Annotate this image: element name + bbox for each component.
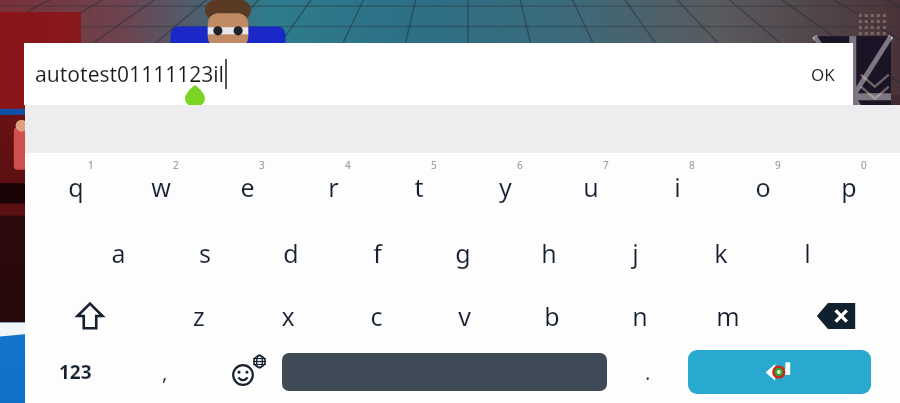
button[interactable]: b — [508, 285, 596, 347]
button[interactable]: Enter — [688, 350, 871, 394]
button[interactable]: u — [548, 153, 634, 221]
button[interactable]: c — [332, 285, 420, 347]
button[interactable]: 123 — [25, 347, 126, 397]
staticText: d — [283, 236, 299, 270]
staticText: 9 — [775, 158, 781, 172]
staticText: OK — [811, 63, 835, 86]
staticText: 6 — [517, 158, 523, 172]
button[interactable]: f — [334, 221, 420, 285]
staticText: c — [370, 299, 383, 333]
button[interactable]: i — [634, 153, 720, 221]
staticText: l — [804, 236, 811, 270]
button[interactable]: m — [684, 285, 772, 347]
staticText: 4 — [345, 158, 351, 172]
staticText: n — [632, 299, 648, 333]
button[interactable]: o — [720, 153, 806, 221]
staticText: i — [674, 170, 681, 204]
staticText: 2 — [173, 158, 179, 172]
button[interactable]: Space — [282, 353, 607, 391]
button[interactable]: l — [764, 221, 850, 285]
staticText: e — [240, 170, 255, 204]
button[interactable]: d — [248, 221, 334, 285]
button[interactable]: n — [596, 285, 684, 347]
button[interactable]: v — [420, 285, 508, 347]
staticText: 5 — [431, 158, 437, 172]
staticText: b — [544, 299, 560, 333]
staticText: autotest01111123il — [35, 60, 225, 89]
staticText: , — [162, 359, 168, 386]
staticText: t — [414, 170, 424, 204]
button[interactable]: s — [162, 221, 248, 285]
staticText: o — [755, 170, 771, 204]
staticText: 3 — [259, 158, 265, 172]
button[interactable]: g — [420, 221, 506, 285]
staticText: y — [499, 170, 512, 204]
button[interactable]: Emoji and language — [204, 347, 282, 397]
button[interactable]: p — [806, 153, 892, 221]
staticText: 1 — [88, 158, 94, 172]
button[interactable]: Backspace — [772, 285, 900, 347]
staticText: k — [714, 236, 728, 270]
button[interactable]: a — [75, 221, 162, 285]
staticText: s — [199, 236, 211, 270]
staticText: g — [455, 236, 471, 270]
button[interactable]: t — [376, 153, 462, 221]
staticText: m — [716, 299, 740, 333]
button[interactable]: r — [290, 153, 376, 221]
staticText: x — [281, 299, 295, 333]
button[interactable]: Shift — [25, 285, 154, 347]
staticText: 123 — [59, 359, 92, 385]
button[interactable]: k — [678, 221, 764, 285]
staticText: . — [645, 359, 651, 386]
staticText: h — [541, 236, 557, 270]
button[interactable]: h — [506, 221, 592, 285]
staticText: 0 — [861, 158, 867, 172]
staticText: w — [151, 170, 171, 204]
button[interactable]: q — [33, 153, 118, 221]
staticText: q — [68, 170, 84, 204]
staticText: v — [458, 299, 471, 333]
staticText: r — [328, 170, 339, 204]
button[interactable]: OK — [811, 43, 835, 105]
staticText: u — [583, 170, 599, 204]
staticText: z — [193, 299, 205, 333]
staticText: p — [841, 170, 857, 204]
staticText: j — [632, 236, 639, 270]
button[interactable]: autotest01111123il — [35, 43, 793, 105]
button[interactable]: e — [204, 153, 290, 221]
staticText: 7 — [603, 158, 609, 172]
button[interactable]: x — [243, 285, 332, 347]
staticText: a — [111, 236, 126, 270]
staticText: 8 — [689, 158, 695, 172]
staticText: f — [373, 236, 382, 270]
button[interactable]: y — [462, 153, 548, 221]
button[interactable]: w — [118, 153, 204, 221]
button[interactable]: z — [154, 285, 243, 347]
button[interactable]: , — [126, 347, 204, 397]
button[interactable]: j — [592, 221, 678, 285]
button[interactable]: . — [607, 347, 688, 397]
